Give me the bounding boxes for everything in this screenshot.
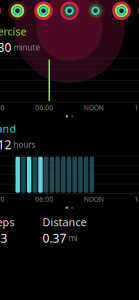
staticText: 863 [0,230,7,246]
button[interactable]: W [34,0,52,19]
staticText: 1/30 [0,39,11,55]
staticText: Steps [0,215,14,229]
staticText: F [93,0,97,1]
button[interactable]: S [138,0,139,19]
staticText: 18:00 [134,195,139,204]
staticText: 06:00 [35,195,53,204]
staticText: 06:00 [35,103,53,112]
staticText: mi [68,233,77,243]
staticText: Stand [0,122,16,136]
staticText: minute [13,42,40,53]
staticText: hours [13,139,35,150]
staticText: NOON [84,103,104,112]
staticText: NOON [84,195,104,204]
staticText: 00:00 [0,103,4,112]
staticText: 18:00 [134,103,139,112]
staticText: Distance [42,215,86,229]
staticText: 3/12 [0,137,11,153]
button[interactable]: S [112,0,130,19]
button[interactable]: T [60,0,78,19]
button[interactable]: F [86,0,104,19]
button[interactable]: T [8,0,26,19]
staticText: 0.37 [42,230,66,246]
staticText: Exercise [0,24,26,38]
staticText: 00:00 [0,195,4,204]
